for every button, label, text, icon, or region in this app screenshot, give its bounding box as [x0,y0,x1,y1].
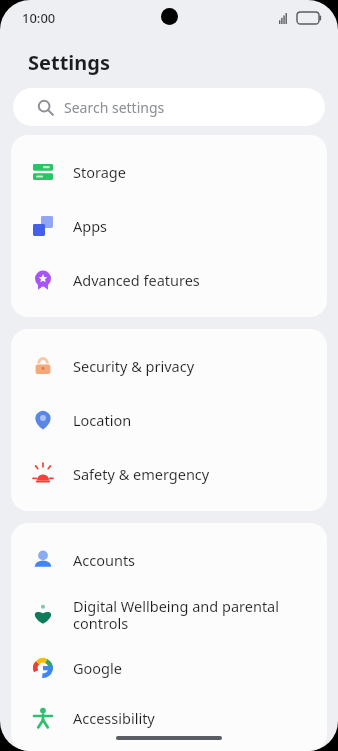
staticText: Accounts [73,550,136,570]
staticText: 10:00 [22,9,56,27]
staticText: Advanced features [73,270,200,290]
button[interactable]: Safety & emergency [11,447,327,501]
staticText: Location [73,410,132,430]
button[interactable]: Storage [11,145,327,199]
staticText: Storage [73,162,126,182]
button[interactable]: Google [11,641,327,695]
staticText: Safety & emergency [73,464,210,484]
staticText: Apps [73,216,108,236]
button[interactable]: Accounts [11,533,327,587]
staticText: Google [73,658,122,678]
staticText: Settings [28,49,110,76]
button[interactable]: Location [11,393,327,447]
staticText: Security & privacy [73,356,195,376]
button[interactable]: Digital Wellbeing and parental controls [11,587,327,641]
button[interactable]: Security & privacy [11,339,327,393]
staticText: Search settings [64,98,165,117]
button[interactable]: Advanced features [11,253,327,307]
button[interactable]: Search settings [13,88,325,126]
button[interactable]: Accessibility [11,695,327,741]
button[interactable]: Apps [11,199,327,253]
staticText: Digital Wellbeing and parental controls [73,596,311,633]
staticText: Accessibility [73,708,155,728]
